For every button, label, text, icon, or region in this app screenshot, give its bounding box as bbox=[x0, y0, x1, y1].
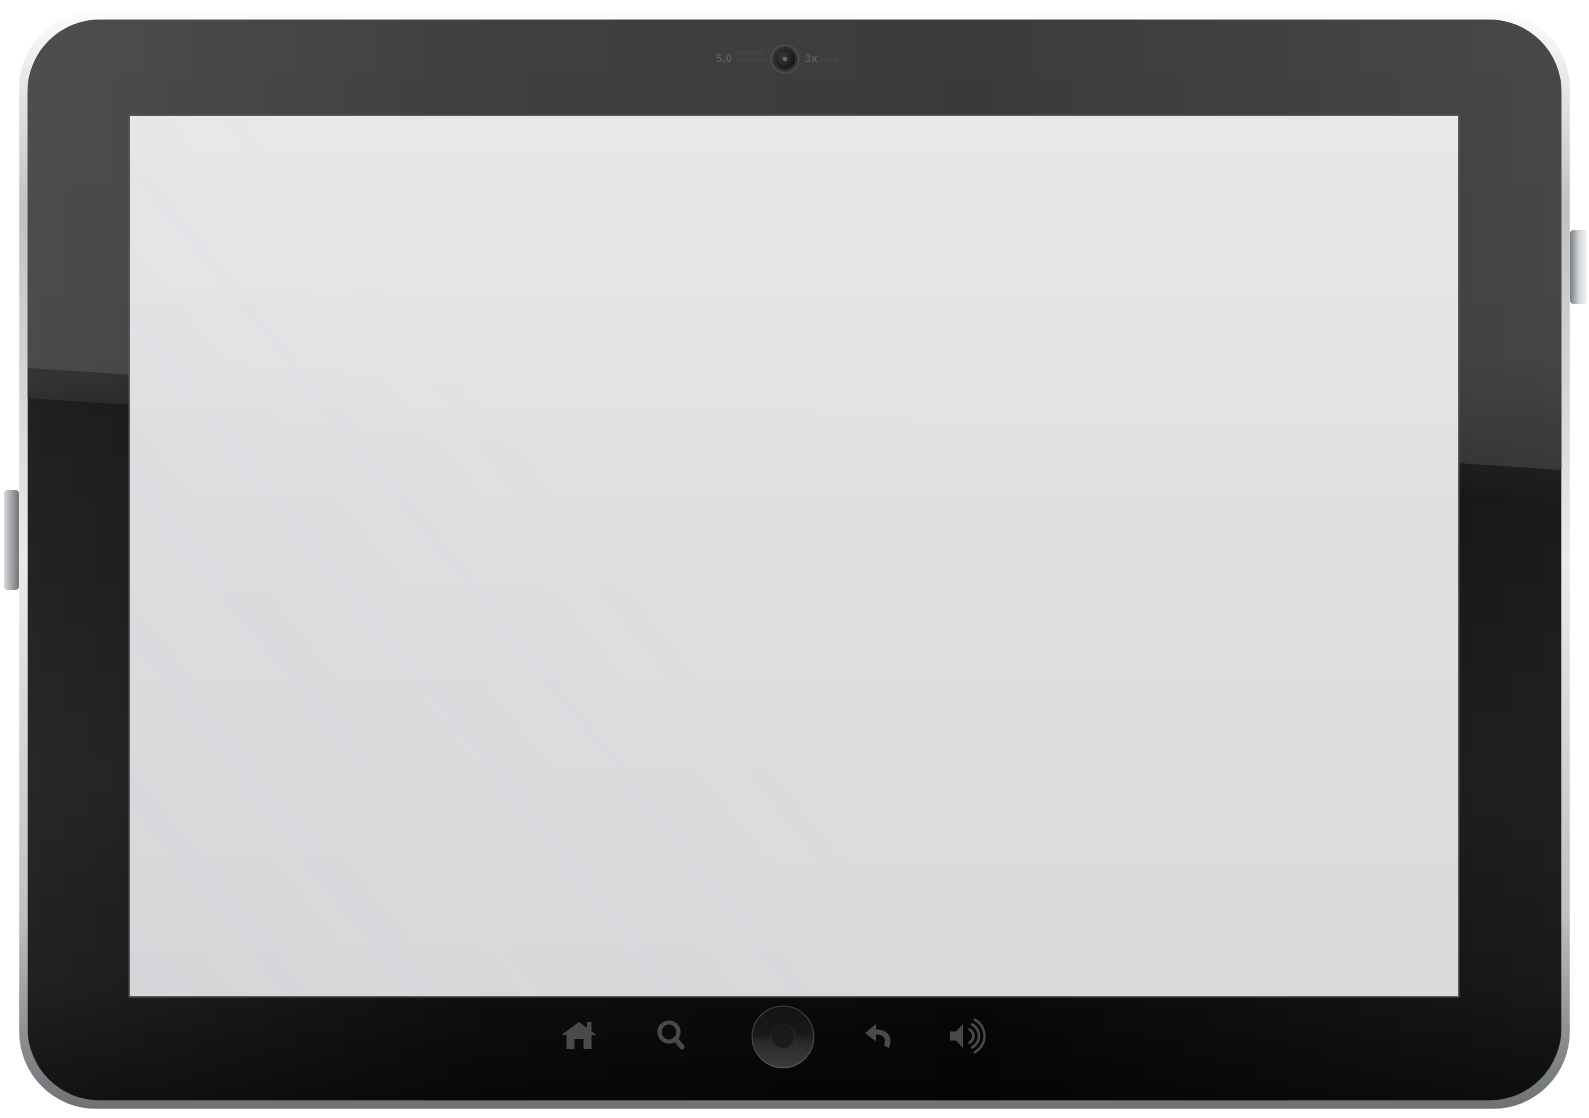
button[interactable]: Power key bbox=[1570, 228, 1588, 306]
staticText: MEGAPIXEL AUTOFOCUS bbox=[737, 50, 767, 63]
button[interactable]: Volume key bbox=[2, 488, 18, 592]
staticText: ZOOM bbox=[820, 56, 839, 64]
button[interactable]: Search bbox=[645, 1010, 697, 1062]
staticText: 5.0 bbox=[716, 50, 732, 65]
button[interactable]: Volume bbox=[939, 1010, 991, 1062]
button[interactable]: Home button bbox=[752, 1005, 814, 1067]
staticText: 3x bbox=[805, 50, 818, 65]
button[interactable]: Back bbox=[853, 1010, 905, 1062]
button[interactable]: Home bbox=[553, 1010, 605, 1062]
